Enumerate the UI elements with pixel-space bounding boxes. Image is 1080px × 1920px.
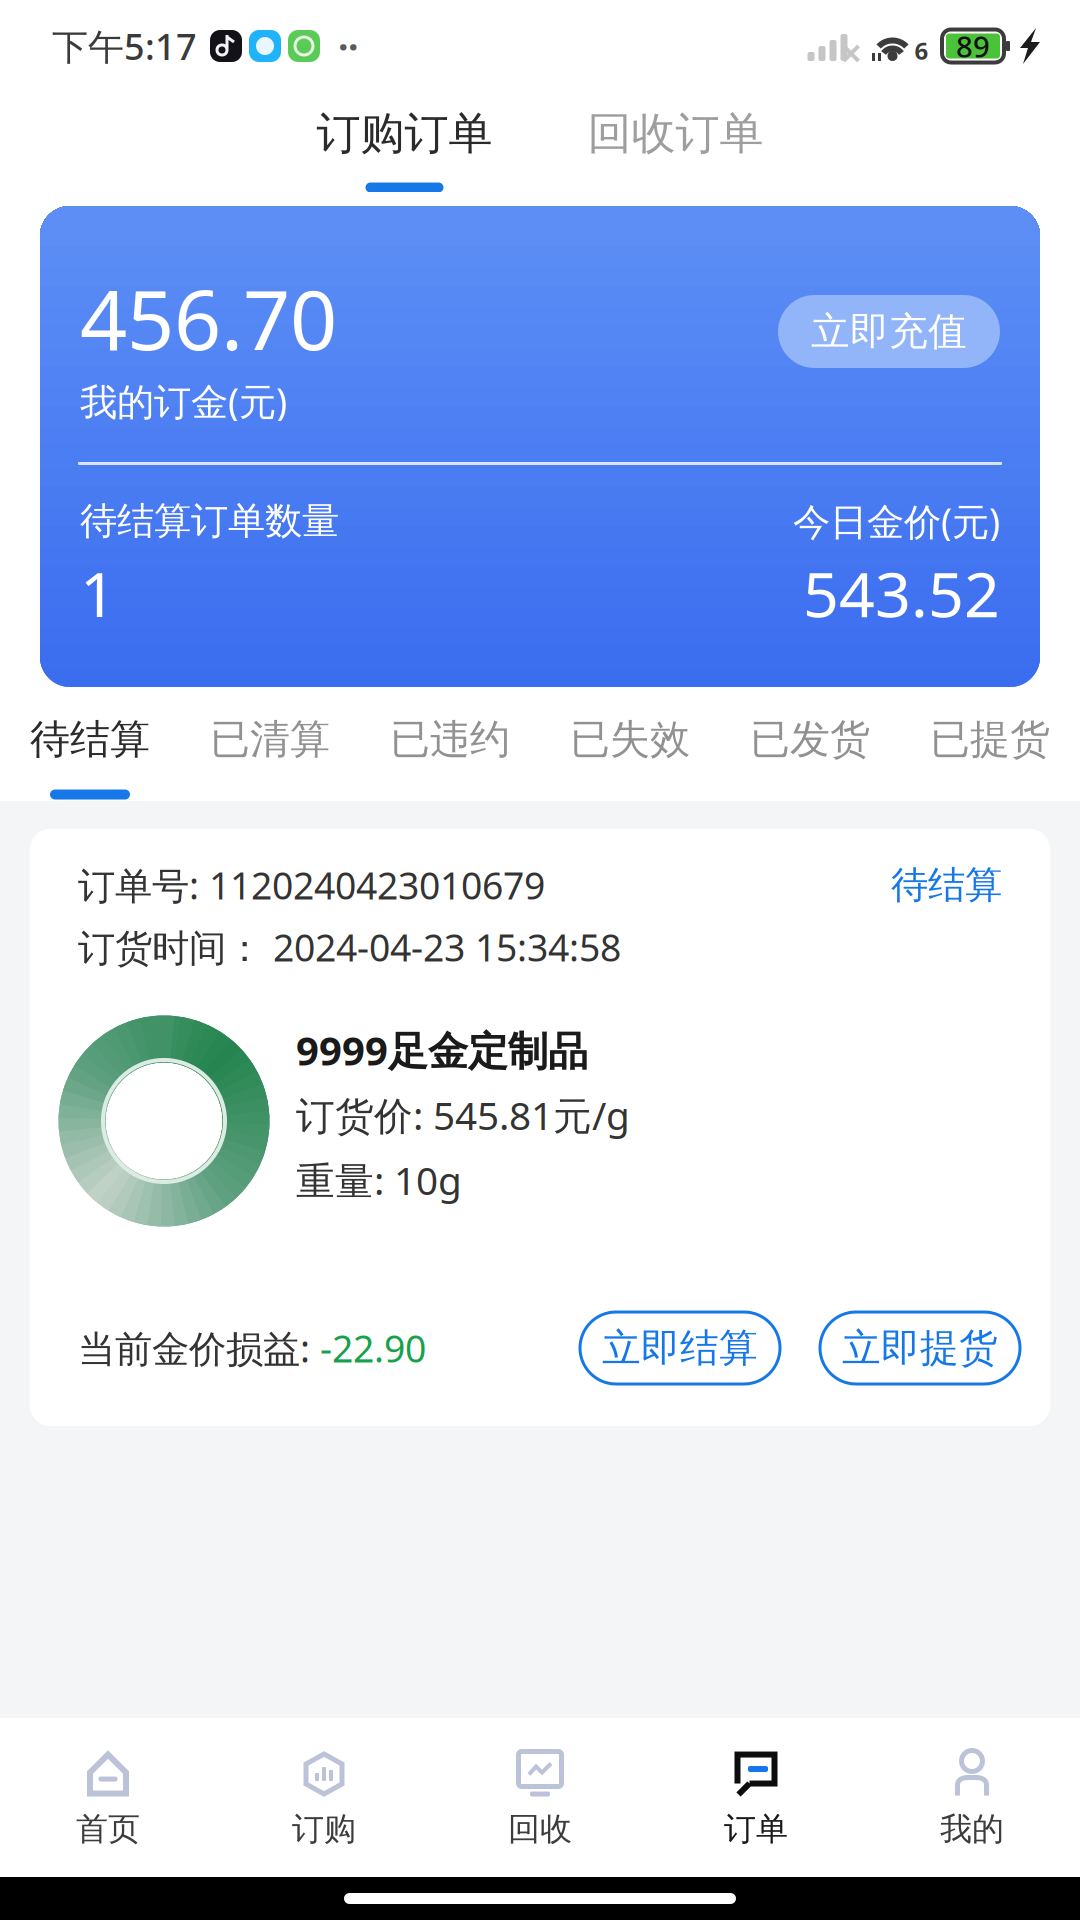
button[interactable]: 立即充值 [778, 295, 1000, 368]
staticText: 待结算 [30, 715, 150, 764]
staticText: 首页 [76, 1809, 140, 1849]
staticText: 重量: 10g [296, 1154, 462, 1206]
staticText: 已发货 [750, 715, 870, 764]
button[interactable]: 订购 [216, 1718, 432, 1877]
button[interactable]: 首页 [0, 1718, 216, 1877]
staticText: 立即提货 [842, 1324, 998, 1372]
staticText: 已违约 [390, 715, 510, 764]
staticText: 下午5:17 [52, 22, 197, 70]
button[interactable]: 待结算 [0, 692, 180, 799]
staticText: 已清算 [210, 715, 330, 764]
staticText: 456.70 [80, 263, 337, 373]
staticText: 待结算订单数量 [80, 498, 339, 544]
staticText: 立即结算 [602, 1324, 758, 1372]
staticText: 我的 [940, 1809, 1004, 1849]
button[interactable]: 回收 [432, 1718, 648, 1877]
staticText: 已提货 [930, 715, 1050, 764]
staticText: 543.52 [803, 551, 1000, 635]
button[interactable]: 已发货 [720, 692, 900, 799]
staticText: 当前金价损益: [78, 1323, 320, 1373]
staticText: 回收 [508, 1809, 572, 1849]
staticText: 今日金价(元) [793, 496, 1000, 546]
staticText: 6 [914, 35, 928, 66]
staticText: -22.90 [320, 1323, 426, 1373]
staticText: 订购 [292, 1809, 356, 1849]
button[interactable]: 已失效 [540, 692, 720, 799]
staticText: 订货时间： 2024-04-23 15:34:58 [78, 922, 621, 972]
staticText: 订购订单 [316, 106, 492, 160]
staticText: 已失效 [570, 715, 690, 764]
staticText: 我的订金(元) [80, 376, 287, 426]
button[interactable]: 立即提货 [820, 1312, 1020, 1384]
button[interactable]: 立即结算 [580, 1312, 780, 1384]
staticText: 1 [80, 551, 116, 635]
staticText: 立即充值 [811, 308, 967, 355]
button[interactable]: 已提货 [900, 692, 1080, 799]
button[interactable]: 订购订单 [316, 91, 492, 192]
button[interactable]: 我的 [864, 1718, 1080, 1877]
staticText: 订单 [724, 1809, 788, 1849]
staticText: 回收订单 [587, 106, 763, 160]
staticText: 订货价: 545.81元/g [296, 1089, 630, 1141]
button[interactable]: 已清算 [180, 692, 360, 799]
staticText: ·· [338, 21, 358, 71]
staticText: 订单号: 1120240423010679 [78, 860, 545, 910]
button[interactable]: 已违约 [360, 692, 540, 799]
staticText: 9999足金定制品 [296, 1023, 588, 1076]
staticText: 89 [956, 26, 990, 65]
staticText: 待结算 [891, 862, 1002, 908]
button[interactable]: 订单 [648, 1718, 864, 1877]
button[interactable]: 回收订单 [587, 91, 763, 192]
